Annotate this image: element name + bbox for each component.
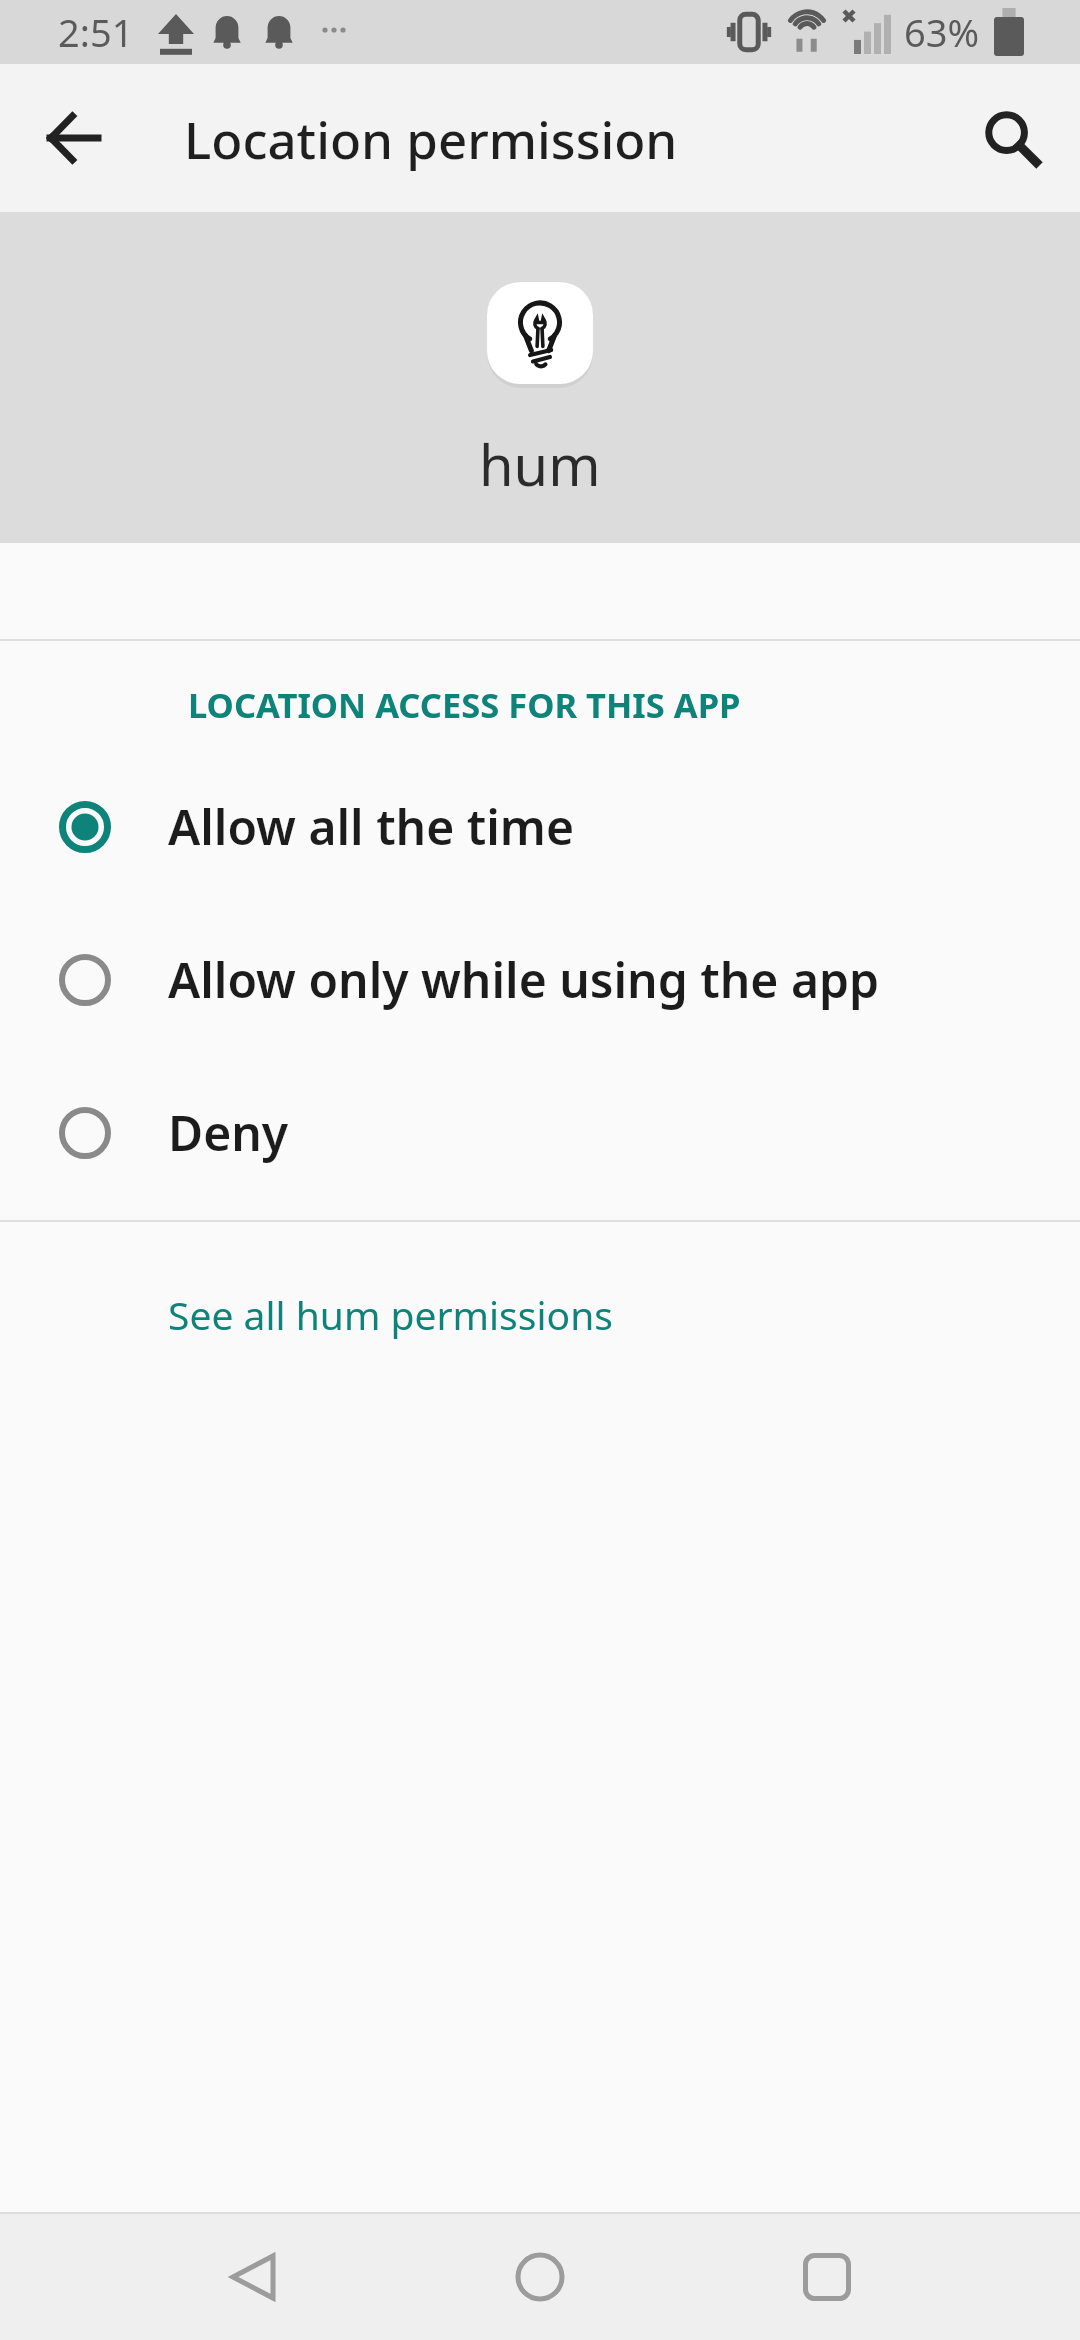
staticText: 63% [904,6,980,58]
staticText: Location permission [184,104,678,173]
button[interactable]: Deny [0,1056,1080,1209]
staticText: Deny [168,1100,289,1165]
button[interactable] [26,90,122,186]
staticText: LOCATION ACCESS FOR THIS APP [188,681,741,728]
staticText: See all hum permissions [168,1288,613,1341]
staticText: hum [479,426,601,502]
button[interactable] [133,2214,373,2340]
staticText: 2:51 [58,6,134,58]
button[interactable] [707,2214,947,2340]
button[interactable] [966,92,1058,184]
button[interactable]: Allow all the time [0,750,1080,903]
staticText: Allow only while using the app [168,947,880,1012]
button[interactable] [420,2214,660,2340]
button[interactable]: Allow only while using the app [0,903,1080,1056]
staticText: Allow all the time [168,794,575,859]
button[interactable]: See all hum permissions [108,1262,673,1367]
